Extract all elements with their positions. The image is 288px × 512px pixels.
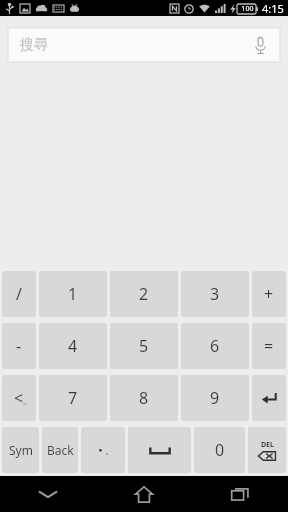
staticText: + [264,283,274,305]
button[interactable]: 0 [194,427,245,473]
button[interactable]: 7 [39,375,107,421]
staticText: 搜尋 [20,36,48,54]
staticText: Back [47,442,74,458]
staticText: 100 [241,4,254,14]
button[interactable]: 1 [39,271,107,317]
staticText: 0 [215,439,225,461]
staticText: / [16,283,22,305]
button[interactable]: Recent apps [192,476,288,512]
button[interactable]: / [2,271,36,317]
staticText: 5 [139,335,149,357]
staticText: 8 [139,387,149,409]
button[interactable]: 搜尋 [8,28,280,62]
button[interactable]: < [2,375,36,421]
staticText: 3 [210,283,220,305]
button[interactable]: Period [81,427,125,473]
staticText: 2 [139,283,149,305]
button[interactable]: - [2,323,36,369]
button[interactable]: Voice search [250,35,270,55]
button[interactable]: Hide keyboard [0,476,96,512]
staticText: 1 [68,283,78,305]
button[interactable]: Home [96,476,192,512]
staticText: 4:15 [262,1,284,16]
staticText: 4 [68,335,78,357]
staticText: 9 [210,387,220,409]
button[interactable]: 6 [181,323,249,369]
button[interactable]: 2 [110,271,178,317]
button[interactable]: 4 [39,323,107,369]
staticText: > [23,400,27,408]
button[interactable]: 3 [181,271,249,317]
button[interactable]: Back [42,427,78,473]
staticText: - [16,335,22,357]
button[interactable]: = [252,323,286,369]
button[interactable]: Delete [248,427,286,473]
button[interactable]: Space [128,427,191,473]
staticText: < [14,387,24,409]
button[interactable]: 8 [110,375,178,421]
button[interactable]: Sym [2,427,39,473]
button[interactable]: Enter [252,375,286,421]
button[interactable]: 9 [181,375,249,421]
staticText: 7 [68,387,78,409]
staticText: Sym [9,442,33,458]
staticText: = [264,335,274,357]
staticText: DEL [261,440,274,450]
button[interactable]: + [252,271,286,317]
button[interactable]: 5 [110,323,178,369]
staticText: 6 [210,335,220,357]
